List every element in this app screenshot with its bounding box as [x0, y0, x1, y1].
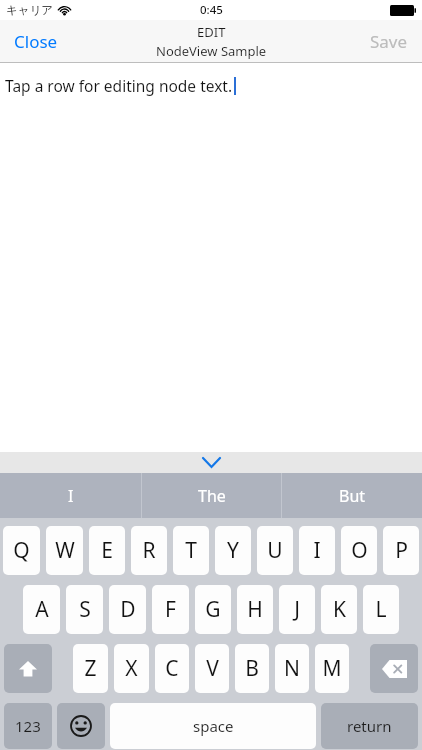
staticText: K: [333, 595, 346, 624]
staticText: space: [193, 716, 234, 736]
button[interactable]: V: [195, 644, 229, 693]
button[interactable]: L: [363, 585, 399, 634]
staticText: Q: [13, 536, 30, 565]
staticText: EDIT: [197, 23, 226, 41]
staticText: S: [79, 595, 91, 624]
staticText: F: [165, 595, 176, 624]
button[interactable]: K: [321, 585, 357, 634]
staticText: 123: [15, 716, 41, 736]
staticText: V: [206, 654, 219, 683]
staticText: N: [284, 654, 300, 683]
button[interactable]: space: [110, 703, 316, 749]
staticText: D: [120, 595, 136, 624]
staticText: H: [247, 595, 263, 624]
staticText: return: [347, 716, 392, 736]
button[interactable]: Q: [3, 526, 40, 575]
button[interactable]: B: [235, 644, 269, 693]
staticText: G: [205, 595, 221, 624]
staticText: B: [245, 654, 259, 683]
button[interactable]: M: [315, 644, 349, 693]
button[interactable]: Hide keyboard: [0, 452, 422, 473]
staticText: The: [198, 485, 226, 507]
button[interactable]: H: [237, 585, 273, 634]
button[interactable]: T: [173, 526, 209, 575]
button[interactable]: A: [23, 585, 60, 634]
button[interactable]: Shift: [4, 644, 52, 693]
button[interactable]: D: [109, 585, 146, 634]
staticText: Y: [227, 536, 239, 565]
button[interactable]: N: [275, 644, 309, 693]
button[interactable]: O: [341, 526, 377, 575]
staticText: M: [322, 654, 342, 683]
button[interactable]: But: [282, 473, 422, 518]
staticText: T: [185, 536, 197, 565]
button[interactable]: C: [155, 644, 189, 693]
button[interactable]: G: [195, 585, 231, 634]
staticText: キャリア: [6, 3, 54, 17]
button[interactable]: I: [299, 526, 335, 575]
button[interactable]: E: [89, 526, 125, 575]
button[interactable]: Y: [215, 526, 251, 575]
staticText: A: [35, 595, 49, 624]
button[interactable]: X: [114, 644, 149, 693]
button[interactable]: The: [142, 473, 281, 518]
button[interactable]: W: [46, 526, 83, 575]
button[interactable]: P: [383, 526, 419, 575]
staticText: U: [267, 536, 283, 565]
button[interactable]: Save: [356, 22, 422, 61]
staticText: W: [55, 536, 75, 565]
staticText: C: [165, 654, 179, 683]
button[interactable]: R: [131, 526, 167, 575]
staticText: But: [339, 485, 366, 507]
button[interactable]: 123: [4, 703, 52, 749]
button[interactable]: U: [257, 526, 293, 575]
staticText: Save: [370, 30, 408, 53]
staticText: P: [395, 536, 408, 565]
button[interactable]: J: [279, 585, 315, 634]
staticText: Tap a row for editing node text.: [5, 75, 233, 96]
staticText: I: [68, 485, 74, 507]
staticText: E: [101, 536, 113, 565]
button[interactable]: S: [66, 585, 103, 634]
staticText: 0:45: [200, 2, 223, 18]
staticText: Z: [84, 654, 97, 683]
button[interactable]: I: [0, 473, 141, 518]
staticText: R: [142, 536, 156, 565]
button[interactable]: Z: [73, 644, 108, 693]
button[interactable]: Backspace: [370, 644, 418, 693]
button[interactable]: F: [152, 585, 189, 634]
button[interactable]: Close: [0, 22, 72, 61]
staticText: NodeView Sample: [156, 42, 267, 60]
staticText: X: [125, 654, 138, 683]
staticText: I: [313, 536, 321, 565]
staticText: O: [351, 536, 368, 565]
staticText: L: [375, 595, 387, 624]
button[interactable]: Emoji: [57, 703, 105, 749]
staticText: Close: [14, 30, 58, 53]
staticText: J: [294, 595, 300, 624]
button[interactable]: return: [321, 703, 418, 749]
